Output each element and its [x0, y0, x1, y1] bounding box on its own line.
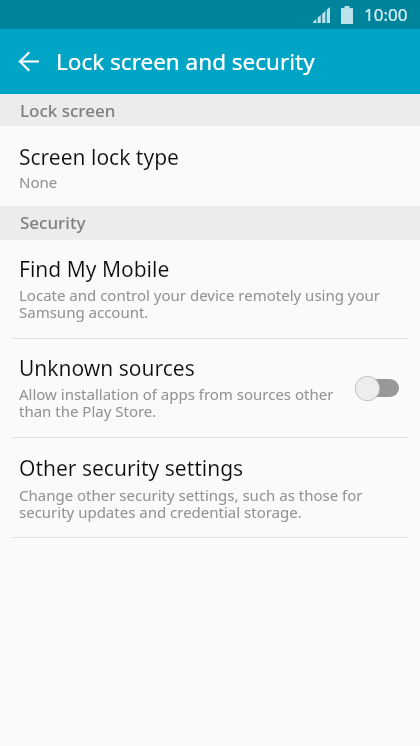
staticText: Find My Mobile — [19, 255, 170, 284]
staticText: Unknown sources — [19, 354, 195, 383]
button[interactable]: Other security settings — [0, 438, 420, 537]
staticText: Lock screen and security — [56, 46, 315, 77]
staticText: None — [19, 172, 58, 192]
staticText: Lock screen — [20, 99, 116, 122]
staticText: Other security settings — [19, 454, 244, 483]
staticText: Security — [20, 211, 86, 234]
button[interactable]: Unknown sources toggle — [354, 360, 420, 416]
button[interactable]: Find My Mobile — [0, 240, 420, 338]
staticText: Change other security settings, such as … — [19, 485, 394, 523]
staticText: 10:00 — [364, 3, 408, 26]
staticText: Locate and control your device remotely … — [19, 285, 408, 323]
staticText: Screen lock type — [19, 143, 179, 172]
button[interactable]: Unknown sources — [0, 339, 420, 437]
button[interactable]: Screen lock type — [0, 126, 420, 206]
button[interactable]: Navigate up — [0, 29, 48, 94]
staticText: Allow installation of apps from sources … — [19, 384, 340, 422]
